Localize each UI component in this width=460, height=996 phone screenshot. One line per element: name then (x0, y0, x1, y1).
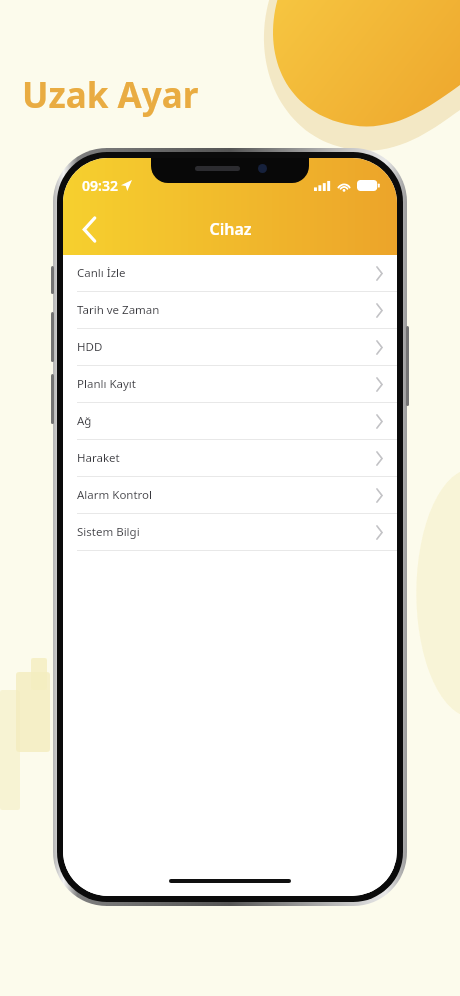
button[interactable]: Haraket (63, 440, 397, 476)
staticText: Alarm Kontrol (77, 487, 153, 503)
staticText: Uzak Ayar (22, 71, 199, 119)
staticText: Cihaz (209, 218, 252, 240)
staticText: Ağ (77, 413, 92, 429)
button[interactable]: Canlı İzle (63, 255, 397, 291)
staticText: Tarih ve Zaman (77, 302, 160, 318)
staticText: Sistem Bilgi (77, 524, 140, 540)
staticText: Haraket (77, 450, 120, 466)
button[interactable]: Back (67, 207, 111, 251)
staticText: 09:32 (82, 176, 118, 195)
staticText: Planlı Kayıt (77, 376, 136, 392)
button[interactable]: Tarih ve Zaman (63, 292, 397, 328)
button[interactable]: Planlı Kayıt (63, 366, 397, 402)
button[interactable]: Alarm Kontrol (63, 477, 397, 513)
button[interactable]: Ağ (63, 403, 397, 439)
staticText: HDD (77, 339, 103, 355)
staticText: Canlı İzle (77, 265, 126, 281)
button[interactable]: Sistem Bilgi (63, 514, 397, 550)
button[interactable]: HDD (63, 329, 397, 365)
